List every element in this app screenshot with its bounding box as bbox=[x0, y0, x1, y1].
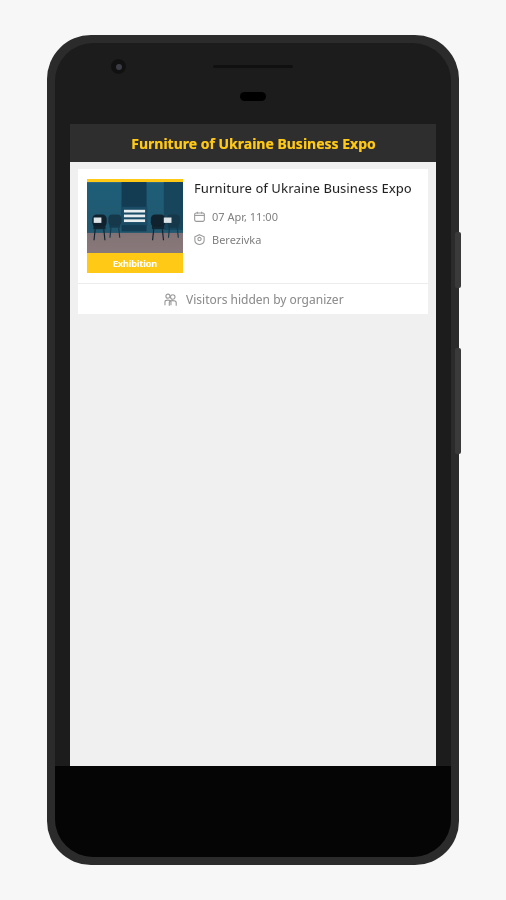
staticText: Furniture of Ukraine Business Expo bbox=[131, 134, 376, 153]
button[interactable]: Visitors hidden by organizer bbox=[78, 284, 428, 314]
button[interactable]: Furniture of Ukraine Business Expo bbox=[70, 124, 436, 162]
staticText: Exhibition bbox=[113, 257, 158, 269]
staticText: Visitors hidden by organizer bbox=[186, 291, 344, 307]
button[interactable]: Exhibition bbox=[78, 169, 428, 283]
staticText: Berezivka bbox=[212, 232, 262, 247]
staticText: Furniture of Ukraine Business Expo bbox=[194, 179, 412, 197]
staticText: 07 Apr, 11:00 bbox=[212, 209, 278, 224]
